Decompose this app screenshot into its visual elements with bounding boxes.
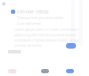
- staticText: Lorem ipsum dolor sit amet consectetur: [14, 27, 78, 32]
- button[interactable]: Menu: [2, 2, 6, 6]
- staticText: adipiscing elit sed do eiusmod tempor: [14, 33, 76, 37]
- staticText: incididunt ut labore dolore magna aliqua: [14, 38, 79, 42]
- button[interactable]: Confirm: [66, 69, 74, 73]
- button[interactable]: Delete: [8, 69, 16, 74]
- staticText: ut enim ad minim: [14, 43, 42, 48]
- button[interactable]: Primary action: [66, 43, 76, 49]
- staticText: Reminder settings: [16, 9, 48, 14]
- staticText: Choose how you want alerts: [16, 16, 63, 20]
- button[interactable]: Cancel: [41, 69, 49, 73]
- staticText: to be delivered: [16, 21, 40, 25]
